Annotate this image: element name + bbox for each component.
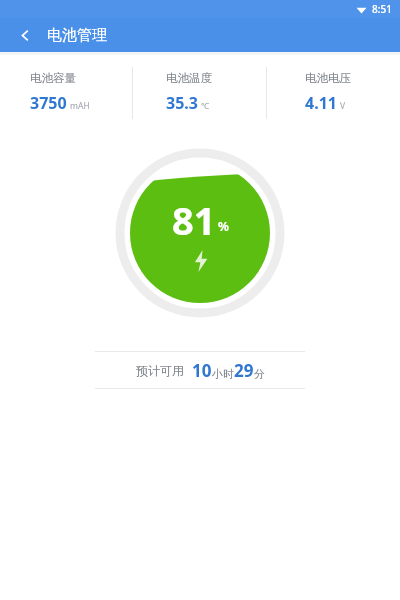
staticText: 10 bbox=[192, 359, 212, 382]
staticText: 电池管理 bbox=[47, 26, 107, 45]
staticText: 电池电压 bbox=[305, 71, 351, 85]
button[interactable]: Back bbox=[12, 22, 38, 48]
staticText: 小时 bbox=[212, 367, 234, 381]
staticText: 8:51 bbox=[372, 2, 392, 16]
staticText: 电池容量 bbox=[30, 71, 76, 85]
staticText: 3750 bbox=[30, 92, 67, 114]
staticText: % bbox=[218, 218, 229, 234]
staticText: 预计可用 bbox=[136, 363, 184, 378]
staticText: 4.11 bbox=[305, 92, 337, 114]
staticText: 29 bbox=[234, 359, 254, 382]
staticText: V bbox=[340, 100, 346, 112]
staticText: 81 bbox=[172, 194, 216, 246]
staticText: mAH bbox=[70, 100, 90, 112]
staticText: ℃ bbox=[201, 100, 210, 112]
staticText: 分 bbox=[254, 367, 265, 381]
staticText: 电池温度 bbox=[166, 71, 212, 85]
staticText: 35.3 bbox=[166, 92, 198, 114]
